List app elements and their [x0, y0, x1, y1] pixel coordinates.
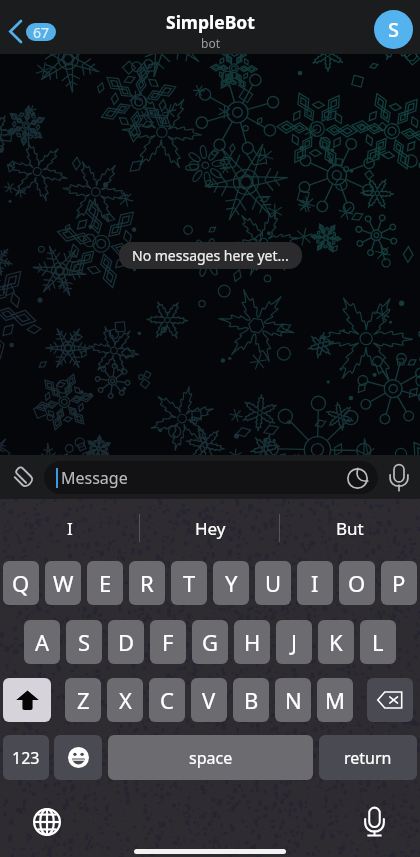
button[interactable]: Hey	[140, 499, 280, 559]
button[interactable]: E	[87, 561, 123, 605]
staticText: SimpleBot	[166, 10, 255, 34]
staticText: G	[202, 627, 219, 657]
button[interactable]: B	[233, 678, 269, 722]
button[interactable]: Message	[44, 461, 378, 494]
staticText: 123	[12, 747, 40, 769]
staticText: But	[336, 517, 364, 540]
staticText: Z	[77, 685, 90, 715]
button[interactable]: Emoji	[54, 735, 102, 780]
button[interactable]: K	[318, 620, 354, 664]
button[interactable]: F	[150, 620, 186, 664]
button[interactable]: X	[107, 678, 143, 722]
button[interactable]: Profile avatar	[374, 10, 413, 49]
staticText: B	[244, 685, 259, 715]
staticText: No messages here yet...	[132, 246, 289, 265]
button[interactable]: V	[191, 678, 227, 722]
staticText: C	[160, 685, 174, 715]
staticText: J	[291, 627, 298, 657]
button[interactable]: Q	[3, 561, 39, 605]
staticText: L	[372, 627, 384, 657]
button[interactable]: D	[108, 620, 144, 664]
button[interactable]: Dictate	[359, 807, 389, 837]
staticText: A	[35, 627, 50, 657]
button[interactable]: M	[317, 678, 353, 722]
button[interactable]: R	[129, 561, 165, 605]
staticText: space	[189, 747, 233, 769]
button[interactable]: U	[255, 561, 291, 605]
button[interactable]: return	[319, 735, 417, 780]
button[interactable]: P	[381, 561, 417, 605]
staticText: M	[325, 685, 345, 715]
staticText: I	[67, 517, 73, 540]
button[interactable]: Y	[213, 561, 249, 605]
button[interactable]: I	[0, 499, 140, 559]
staticText: O	[348, 568, 366, 598]
button[interactable]: G	[192, 620, 228, 664]
button[interactable]: Back, 67 unread	[5, 15, 60, 48]
staticText: T	[183, 568, 196, 598]
staticText: S	[388, 16, 399, 43]
staticText: bot	[201, 35, 220, 51]
button[interactable]: C	[149, 678, 185, 722]
button[interactable]: Voice message	[380, 458, 418, 496]
button[interactable]: Z	[65, 678, 101, 722]
button[interactable]: L	[360, 620, 396, 664]
staticText: P	[392, 568, 406, 598]
staticText: H	[244, 627, 261, 657]
button[interactable]: H	[234, 620, 270, 664]
staticText: S	[78, 627, 91, 657]
staticText: Q	[12, 568, 30, 598]
staticText: X	[119, 685, 132, 715]
staticText: K	[329, 627, 343, 657]
button[interactable]: Backspace	[367, 678, 413, 722]
staticText: U	[265, 568, 282, 598]
button[interactable]: J	[276, 620, 312, 664]
staticText: D	[118, 627, 135, 657]
button[interactable]: Attach	[5, 459, 41, 495]
button[interactable]: N	[275, 678, 311, 722]
staticText: N	[285, 685, 302, 715]
button[interactable]: Change keyboard	[32, 807, 62, 837]
staticText: R	[140, 568, 154, 598]
button[interactable]: T	[171, 561, 207, 605]
button[interactable]: I	[297, 561, 333, 605]
staticText: V	[202, 685, 216, 715]
staticText: F	[162, 627, 174, 657]
staticText: 67	[33, 23, 50, 41]
button[interactable]: O	[339, 561, 375, 605]
staticText: Message	[61, 467, 128, 489]
button[interactable]: 123	[3, 735, 49, 780]
button[interactable]: space	[108, 735, 313, 780]
staticText: return	[344, 747, 392, 769]
button[interactable]: But	[280, 499, 420, 559]
staticText: W	[53, 568, 74, 598]
button[interactable]: A	[24, 620, 60, 664]
button[interactable]: Shift	[3, 678, 51, 722]
staticText: I	[311, 568, 319, 598]
button[interactable]: Stickers	[343, 464, 371, 492]
staticText: E	[99, 568, 112, 598]
staticText: Y	[225, 568, 238, 598]
button[interactable]: W	[45, 561, 81, 605]
button[interactable]: S	[66, 620, 102, 664]
staticText: Hey	[195, 517, 226, 540]
